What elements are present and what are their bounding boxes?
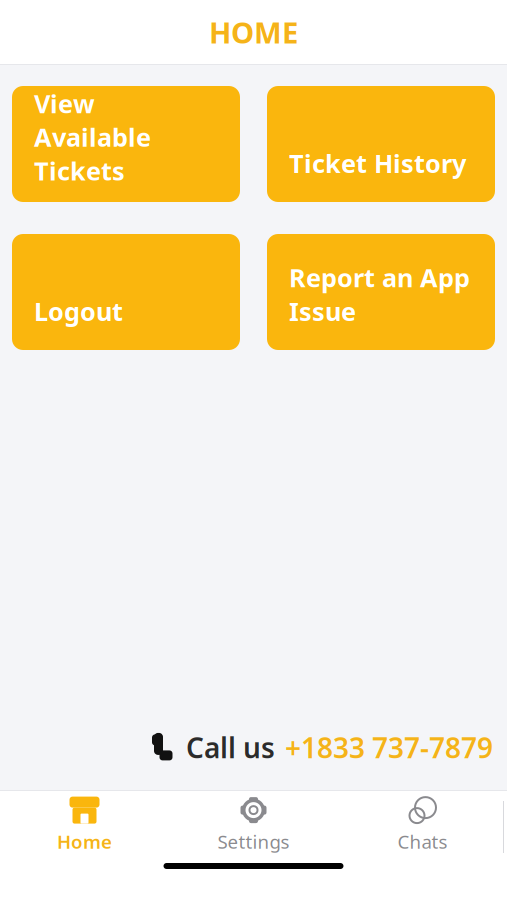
button[interactable]: View Available Tickets	[12, 86, 240, 202]
staticText: HOME	[209, 12, 298, 51]
button[interactable]: Chats	[338, 791, 507, 859]
staticText: Logout	[34, 294, 123, 328]
staticText: +1833 737-7879	[285, 729, 493, 766]
button[interactable]: Report an App Issue	[267, 234, 495, 350]
staticText: Ticket History	[289, 146, 466, 180]
staticText: Chats	[397, 829, 447, 854]
staticText: Settings	[217, 829, 289, 854]
button[interactable]: Settings	[169, 791, 338, 859]
staticText: Home	[57, 829, 112, 854]
button[interactable]: Call us	[0, 729, 493, 766]
staticText: Report an App Issue	[289, 261, 470, 328]
staticText: Call us	[186, 729, 275, 766]
button[interactable]: Home	[0, 791, 169, 859]
button[interactable]: Logout	[12, 234, 240, 350]
staticText: View Available Tickets	[34, 86, 151, 187]
button[interactable]: Ticket History	[267, 86, 495, 202]
